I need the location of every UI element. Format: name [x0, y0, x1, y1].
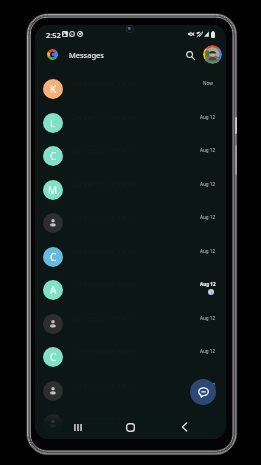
staticText: L: [50, 116, 56, 130]
staticText: Aug 12: [200, 114, 216, 120]
staticText: C: [50, 350, 57, 364]
staticText: Aug 12: [200, 248, 216, 254]
staticText: Now: [203, 80, 213, 86]
button[interactable]: Recent apps: [69, 418, 87, 436]
staticText: Message preview goes here: [71, 426, 149, 434]
button[interactable]: Account: [203, 45, 222, 64]
button[interactable]: L: [35, 106, 226, 140]
staticText: Aug 12: [200, 348, 216, 354]
button[interactable]: Conversation name: [35, 374, 226, 408]
staticText: Aug 12: [200, 281, 216, 287]
staticText: M: [48, 183, 58, 197]
button[interactable]: Conversation name: [35, 206, 226, 240]
button[interactable]: C: [35, 240, 226, 274]
staticText: Aug 12: [200, 181, 216, 187]
button[interactable]: A: [35, 273, 226, 307]
staticText: K: [50, 82, 57, 96]
button[interactable]: Start chat: [190, 379, 216, 405]
staticText: Aug 12: [200, 382, 216, 388]
staticText: 1: [210, 290, 213, 295]
button[interactable]: K: [35, 72, 226, 106]
button[interactable]: Conversation name: [35, 307, 226, 341]
button[interactable]: C: [35, 340, 226, 374]
staticText: Aug 12: [200, 147, 216, 153]
staticText: Conversation name: [71, 414, 136, 424]
button[interactable]: Conversation name: [35, 407, 226, 439]
button[interactable]: Search: [181, 46, 199, 64]
button[interactable]: Back: [175, 418, 193, 436]
staticText: Aug 12: [200, 315, 216, 321]
staticText: C: [50, 250, 57, 264]
button[interactable]: Home: [121, 418, 139, 436]
staticText: 2:52: [46, 30, 61, 40]
staticText: Aug 12: [200, 214, 216, 220]
staticText: A: [50, 283, 57, 297]
staticText: C: [50, 149, 57, 163]
button[interactable]: M: [35, 173, 226, 207]
button[interactable]: C: [35, 139, 226, 173]
staticText: Messages: [69, 50, 104, 60]
